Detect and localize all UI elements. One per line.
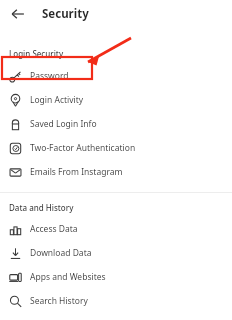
staticText: Login Activity bbox=[30, 94, 84, 106]
button[interactable]: Search History bbox=[0, 289, 232, 313]
button[interactable]: Back bbox=[6, 2, 30, 26]
button[interactable]: Access Data bbox=[0, 217, 232, 241]
staticText: Emails From Instagram bbox=[30, 166, 123, 178]
staticText: Password bbox=[30, 70, 69, 82]
staticText: Search History bbox=[30, 295, 88, 307]
staticText: Apps and Websites bbox=[30, 271, 106, 283]
button[interactable]: Download Data bbox=[0, 241, 232, 265]
staticText: Access Data bbox=[30, 223, 78, 235]
staticText: Security bbox=[42, 6, 89, 22]
button[interactable]: Emails From Instagram bbox=[0, 160, 232, 184]
staticText: Download Data bbox=[30, 247, 92, 259]
button[interactable]: Two-Factor Authentication bbox=[0, 136, 232, 160]
staticText: Login Security bbox=[9, 48, 64, 59]
button[interactable]: Login Activity bbox=[0, 88, 232, 112]
staticText: Two-Factor Authentication bbox=[30, 142, 136, 154]
button[interactable]: Saved Login Info bbox=[0, 112, 232, 136]
staticText: Saved Login Info bbox=[30, 118, 97, 130]
button[interactable]: Password bbox=[0, 64, 232, 88]
staticText: Data and History bbox=[9, 202, 74, 213]
button[interactable]: Apps and Websites bbox=[0, 265, 232, 289]
